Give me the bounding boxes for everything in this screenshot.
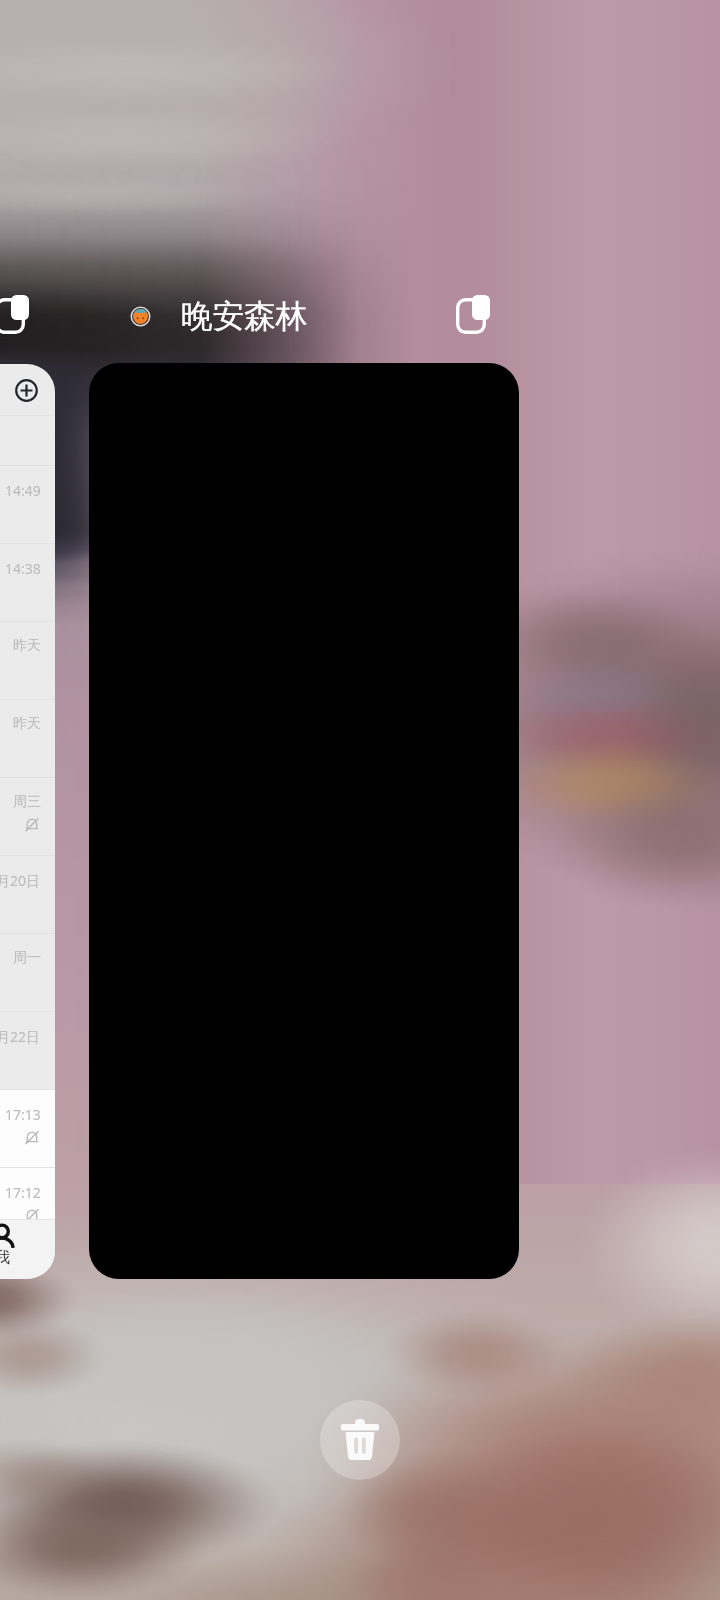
button[interactable] bbox=[89, 363, 519, 1279]
button[interactable]: Add bbox=[0, 364, 55, 1279]
staticText: 17:12 bbox=[5, 1183, 41, 1202]
button[interactable]: Split screen bbox=[445, 294, 501, 338]
button[interactable]: 14:38 bbox=[0, 544, 55, 622]
button[interactable]: 14:49 bbox=[0, 466, 55, 544]
button[interactable]: 17:12 bbox=[0, 1168, 55, 1246]
button[interactable]: Clear all bbox=[320, 1400, 400, 1480]
staticText: 17:13 bbox=[5, 1105, 41, 1124]
button[interactable]: 周一 bbox=[0, 934, 55, 1012]
button[interactable]: 昨天 bbox=[0, 622, 55, 700]
button[interactable]: 月20日 bbox=[0, 856, 55, 934]
staticText: 月20日 bbox=[0, 871, 41, 890]
staticText: 周一 bbox=[13, 949, 41, 967]
button[interactable]: Split screen bbox=[0, 294, 32, 338]
button[interactable]: Add bbox=[11, 375, 41, 405]
staticText: 周三 bbox=[13, 793, 41, 811]
staticText: 14:49 bbox=[5, 481, 41, 500]
button[interactable]: 月22日 bbox=[0, 1012, 55, 1090]
staticText: 晚安森林 bbox=[181, 296, 307, 336]
staticText: 我 bbox=[0, 1248, 10, 1267]
button[interactable]: 昨天 bbox=[0, 700, 55, 778]
staticText: 月22日 bbox=[0, 1027, 41, 1046]
button[interactable]: 周三 bbox=[0, 778, 55, 856]
staticText: 14:38 bbox=[5, 559, 41, 578]
staticText: 昨天 bbox=[13, 637, 41, 655]
button[interactable]: 17:13 bbox=[0, 1090, 55, 1168]
button[interactable]: Me bbox=[0, 1219, 34, 1279]
staticText: 昨天 bbox=[13, 715, 41, 733]
